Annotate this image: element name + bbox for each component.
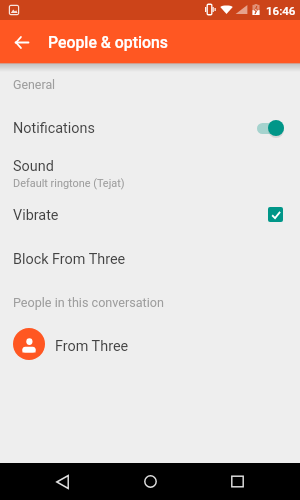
button[interactable]: Home	[130, 463, 170, 500]
staticText: Block From Three	[13, 251, 126, 268]
staticText: People in this conversation	[13, 295, 164, 310]
button[interactable]: Back	[8, 28, 36, 56]
staticText: 16:46	[266, 4, 296, 18]
button[interactable]: Notifications	[0, 110, 300, 144]
staticText: General	[13, 77, 56, 92]
staticText: Sound	[13, 158, 54, 175]
button: General	[13, 77, 56, 92]
staticText: People & options	[48, 33, 168, 52]
button[interactable]: Back	[42, 463, 82, 500]
staticText: From Three	[55, 338, 129, 355]
staticText: Vibrate	[13, 207, 59, 224]
button[interactable]: Sound	[0, 152, 300, 194]
staticText: Default ringtone (Tejat)	[13, 177, 125, 190]
button[interactable]: Vibrate	[0, 198, 300, 232]
button[interactable]: Block From Three	[0, 242, 300, 276]
staticText: Notifications	[13, 120, 95, 137]
button[interactable]: Recent apps	[217, 463, 257, 500]
button[interactable]: From Three	[0, 324, 300, 364]
